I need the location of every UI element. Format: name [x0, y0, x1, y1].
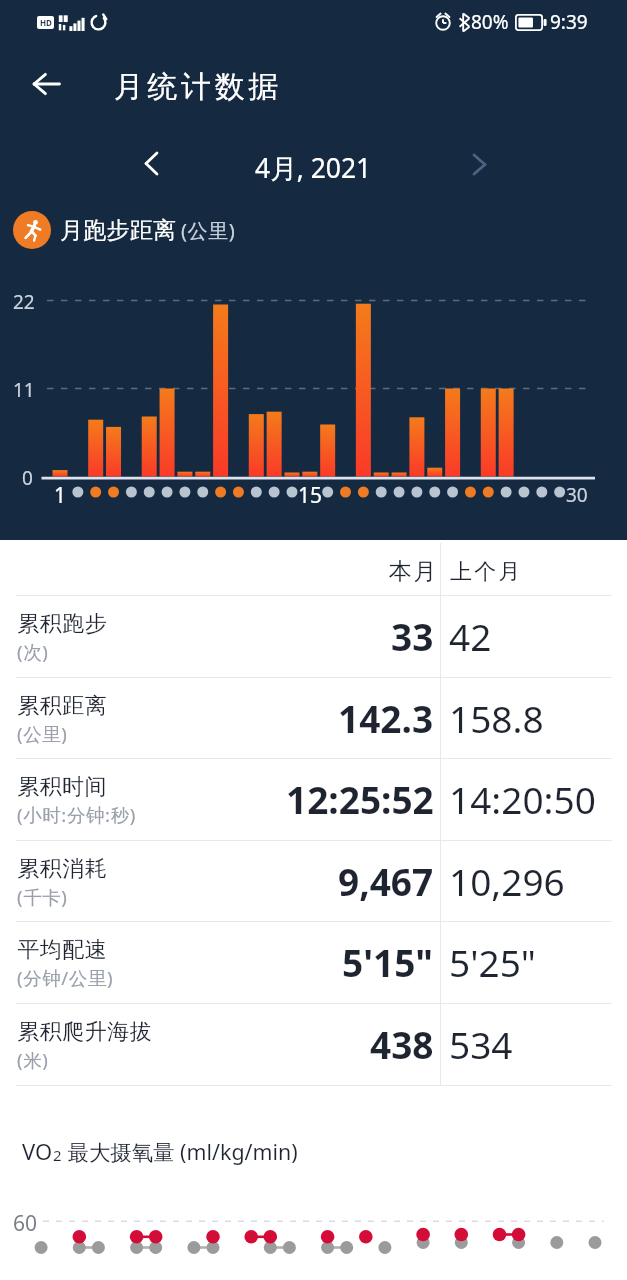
- staticText: 累积爬升海拔: [17, 1018, 152, 1046]
- staticText: (小时:分钟:秒): [17, 802, 136, 827]
- staticText: 10,296: [449, 856, 565, 906]
- staticText: 月跑步距离: [60, 216, 176, 245]
- button[interactable]: 平均配速: [0, 921, 627, 1003]
- staticText: 5'25": [449, 937, 536, 987]
- button[interactable]: Back: [24, 62, 68, 106]
- staticText: 9,467: [338, 856, 434, 906]
- staticText: 上个月: [450, 558, 523, 586]
- staticText: 42: [449, 611, 492, 661]
- staticText: 80%: [471, 9, 509, 35]
- button[interactable]: 累积时间: [0, 758, 627, 840]
- staticText: 142.3: [338, 693, 434, 743]
- staticText: 11: [13, 377, 35, 403]
- staticText: 60: [13, 1209, 38, 1238]
- button[interactable]: Previous month: [129, 141, 173, 185]
- staticText: 158.8: [449, 693, 544, 743]
- staticText: 累积时间: [17, 773, 107, 801]
- staticText: 累积跑步: [17, 610, 107, 638]
- staticText: (分钟/公里): [17, 965, 114, 990]
- staticText: VO: [22, 1136, 53, 1166]
- staticText: HD: [40, 17, 52, 28]
- button[interactable]: 累积消耗: [0, 840, 627, 922]
- staticText: 最大摄氧量 (ml/kg/min): [62, 1137, 298, 1166]
- staticText: 534: [449, 1019, 513, 1069]
- button[interactable]: 累积爬升海拔: [0, 1003, 627, 1085]
- staticText: 平均配速: [17, 936, 107, 964]
- staticText: (公里): [17, 721, 68, 746]
- staticText: 15: [298, 481, 323, 510]
- staticText: 月统计数据: [112, 68, 280, 106]
- staticText: 本月: [388, 557, 437, 586]
- staticText: 33: [391, 611, 434, 661]
- staticText: (公里): [181, 217, 236, 244]
- staticText: 22: [13, 289, 35, 315]
- button[interactable]: Next month: [457, 142, 501, 186]
- staticText: 5'15": [342, 937, 434, 987]
- button[interactable]: 累积距离: [0, 677, 627, 759]
- staticText: 累积消耗: [17, 855, 107, 883]
- staticText: 0: [22, 465, 33, 491]
- staticText: 4月, 2021: [255, 150, 372, 186]
- button[interactable]: 累积跑步: [0, 595, 627, 677]
- staticText: 30: [566, 482, 588, 508]
- staticText: 累积距离: [17, 692, 107, 720]
- staticText: 2: [53, 1145, 62, 1165]
- staticText: (次): [17, 639, 49, 664]
- staticText: (千卡): [17, 884, 68, 909]
- staticText: 14:20:50: [449, 774, 596, 824]
- staticText: 12:25:52: [286, 774, 434, 824]
- staticText: 1: [54, 481, 67, 510]
- staticText: (米): [17, 1047, 49, 1072]
- staticText: 438: [370, 1019, 434, 1069]
- staticText: 9:39: [550, 9, 588, 35]
